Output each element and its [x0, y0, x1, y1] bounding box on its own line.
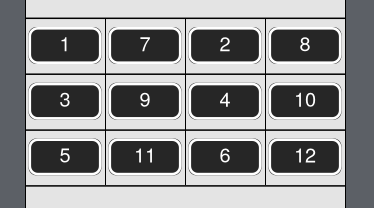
button[interactable]: 11 [108, 138, 181, 175]
staticText: 3 [59, 84, 70, 112]
staticText: 4 [219, 84, 230, 112]
staticText: 5 [59, 140, 70, 168]
button[interactable]: 3 [28, 83, 101, 120]
button[interactable]: 12 [268, 138, 341, 175]
staticText: 10 [294, 84, 316, 112]
button[interactable]: 9 [108, 83, 181, 120]
button[interactable]: 2 [188, 27, 261, 64]
staticText: 2 [219, 28, 230, 57]
button[interactable]: 1 [28, 27, 101, 64]
button[interactable]: 7 [108, 27, 181, 64]
button[interactable]: 8 [268, 27, 341, 64]
button[interactable]: 4 [188, 83, 261, 120]
staticText: 11 [134, 140, 156, 168]
staticText: 7 [139, 28, 150, 57]
staticText: 6 [219, 140, 230, 168]
staticText: 12 [294, 140, 316, 168]
staticText: 9 [139, 84, 150, 112]
button[interactable]: 10 [268, 83, 341, 120]
button[interactable]: 6 [188, 138, 261, 175]
button[interactable]: 5 [28, 138, 101, 175]
staticText: 1 [59, 28, 70, 57]
staticText: 8 [299, 28, 310, 57]
